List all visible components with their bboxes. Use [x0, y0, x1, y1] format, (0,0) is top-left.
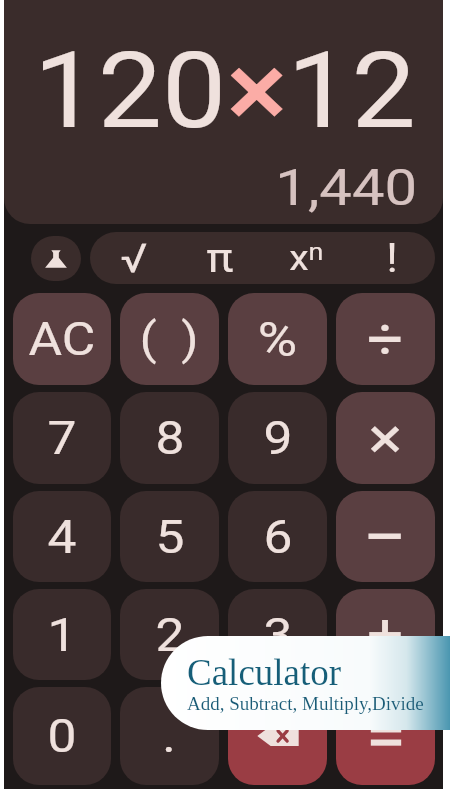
- staticText: xn: [289, 238, 324, 279]
- button[interactable]: 7: [13, 392, 111, 484]
- staticText: 2: [155, 608, 184, 662]
- staticText: 7: [47, 411, 76, 465]
- other: Equals: [362, 712, 410, 760]
- button[interactable]: 1: [13, 589, 111, 680]
- button[interactable]: 120×12: [4, 0, 443, 224]
- button[interactable]: %: [228, 293, 327, 385]
- button[interactable]: xn: [263, 232, 349, 284]
- button[interactable]: ÷: [336, 293, 435, 385]
- button[interactable]: Calculator: [161, 636, 450, 730]
- button[interactable]: −: [336, 491, 435, 582]
- staticText: 120×12: [33, 30, 416, 153]
- button[interactable]: 0: [13, 687, 111, 785]
- button[interactable]: Equals: [336, 687, 435, 785]
- button[interactable]: ×: [336, 392, 435, 484]
- button[interactable]: AC: [13, 293, 111, 385]
- staticText: −: [362, 496, 408, 578]
- staticText: ( ): [140, 313, 199, 365]
- staticText: 0: [47, 709, 76, 763]
- button[interactable]: .: [120, 687, 219, 785]
- other: Backspace: [254, 712, 302, 760]
- button[interactable]: 2: [120, 589, 219, 680]
- staticText: 6: [263, 510, 292, 564]
- staticText: π: [207, 235, 233, 282]
- staticText: %: [258, 311, 298, 367]
- button[interactable]: 4: [13, 491, 111, 582]
- staticText: 1,440: [275, 159, 418, 218]
- button[interactable]: √: [90, 232, 177, 284]
- button[interactable]: 3: [228, 589, 327, 680]
- staticText: 1: [47, 608, 76, 662]
- staticText: AC: [28, 312, 96, 366]
- staticText: 4: [47, 510, 76, 564]
- staticText: 8: [155, 411, 184, 465]
- button[interactable]: Scientific mode: [31, 236, 81, 281]
- button[interactable]: ( ): [120, 293, 219, 385]
- staticText: .: [162, 709, 177, 763]
- button[interactable]: +: [336, 589, 435, 680]
- button[interactable]: 5: [120, 491, 219, 582]
- button[interactable]: Backspace: [228, 687, 327, 785]
- staticText: ×: [368, 405, 403, 472]
- staticText: 5: [155, 510, 184, 564]
- button[interactable]: π: [177, 232, 263, 284]
- staticText: Add, Subtract, Multiply,Divide: [187, 693, 424, 714]
- button[interactable]: !: [349, 232, 435, 284]
- staticText: ÷: [367, 306, 404, 373]
- staticText: +: [367, 601, 404, 668]
- staticText: √: [121, 235, 147, 282]
- button[interactable]: 9: [228, 392, 327, 484]
- staticText: 9: [263, 411, 292, 465]
- staticText: !: [386, 235, 399, 282]
- button[interactable]: 8: [120, 392, 219, 484]
- button[interactable]: 6: [228, 491, 327, 582]
- staticText: 3: [263, 608, 292, 662]
- staticText: Calculator: [187, 652, 342, 693]
